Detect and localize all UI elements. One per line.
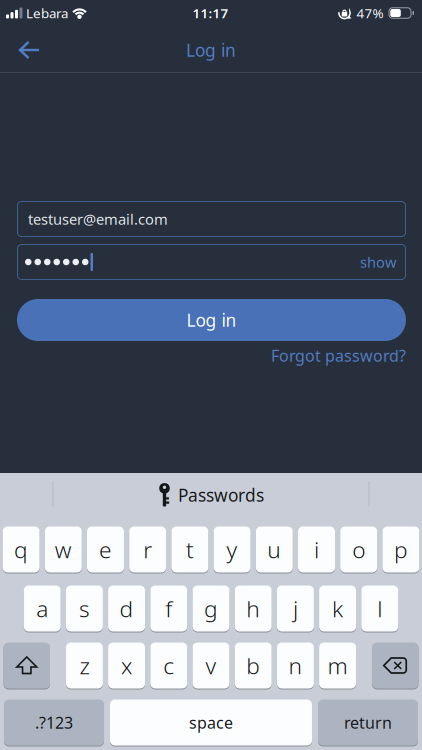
button[interactable]: r bbox=[129, 526, 166, 572]
button[interactable]: s bbox=[66, 585, 103, 631]
button[interactable] bbox=[372, 642, 418, 688]
button[interactable]: v bbox=[192, 642, 229, 688]
button[interactable]: Forgot password? bbox=[271, 345, 406, 366]
button[interactable]: t bbox=[171, 526, 208, 572]
staticText: testuser@email.com bbox=[28, 209, 168, 229]
button[interactable]: e bbox=[87, 526, 124, 572]
button[interactable]: return bbox=[318, 699, 418, 745]
staticText: 47% bbox=[356, 4, 383, 22]
button[interactable]: l bbox=[361, 585, 398, 631]
staticText: l bbox=[377, 593, 382, 623]
staticText: Log in bbox=[186, 38, 236, 61]
button[interactable]: y bbox=[214, 526, 251, 572]
staticText: b bbox=[246, 650, 260, 680]
staticText: w bbox=[55, 534, 72, 564]
staticText: i bbox=[314, 534, 319, 564]
button[interactable]: Passwords bbox=[81, 469, 341, 518]
button[interactable]: p bbox=[382, 526, 419, 572]
button[interactable]: d bbox=[108, 585, 145, 631]
staticText: a bbox=[36, 593, 48, 623]
button[interactable]: m bbox=[319, 642, 356, 688]
staticText: 11:17 bbox=[192, 4, 228, 22]
staticText: u bbox=[267, 534, 281, 564]
button[interactable]: h bbox=[235, 585, 272, 631]
staticText: s bbox=[79, 593, 90, 623]
staticText: x bbox=[121, 650, 132, 680]
staticText: k bbox=[332, 593, 343, 623]
staticText: v bbox=[205, 650, 216, 680]
button[interactable]: w bbox=[45, 526, 82, 572]
button[interactable]: b bbox=[235, 642, 272, 688]
staticText: c bbox=[163, 650, 174, 680]
button[interactable]: n bbox=[277, 642, 314, 688]
button[interactable] bbox=[0, 41, 41, 59]
staticText: o bbox=[352, 534, 365, 564]
staticText: Lebara bbox=[26, 4, 68, 22]
button[interactable]: show bbox=[17, 244, 406, 280]
button[interactable]: z bbox=[66, 642, 103, 688]
staticText: g bbox=[204, 593, 218, 623]
staticText: f bbox=[165, 593, 172, 623]
button[interactable]: j bbox=[277, 585, 314, 631]
staticText: Passwords bbox=[178, 483, 264, 506]
button[interactable]: i bbox=[298, 526, 335, 572]
button[interactable]: k bbox=[319, 585, 356, 631]
staticText: t bbox=[186, 534, 194, 564]
staticText: space bbox=[189, 712, 233, 733]
button[interactable]: space bbox=[110, 699, 312, 745]
staticText: d bbox=[120, 593, 134, 623]
button[interactable]: c bbox=[150, 642, 187, 688]
staticText: return bbox=[344, 712, 392, 733]
button[interactable]: q bbox=[3, 526, 40, 572]
button[interactable]: u bbox=[256, 526, 293, 572]
button[interactable]: testuser@email.com bbox=[17, 201, 406, 237]
button[interactable]: a bbox=[24, 585, 61, 631]
button[interactable]: Log in bbox=[17, 299, 406, 341]
staticText: r bbox=[143, 534, 152, 564]
button[interactable]: .?123 bbox=[4, 699, 104, 745]
staticText: .?123 bbox=[35, 712, 73, 733]
button[interactable]: show bbox=[360, 252, 397, 272]
button[interactable]: o bbox=[340, 526, 377, 572]
button[interactable] bbox=[3, 642, 50, 688]
button[interactable]: g bbox=[192, 585, 229, 631]
staticText: m bbox=[328, 650, 348, 680]
staticText: z bbox=[79, 650, 89, 680]
button[interactable]: f bbox=[150, 585, 187, 631]
staticText: Forgot password? bbox=[271, 345, 406, 366]
staticText: Log in bbox=[186, 308, 236, 331]
staticText: q bbox=[14, 534, 28, 564]
staticText: e bbox=[99, 534, 112, 564]
staticText: p bbox=[394, 534, 408, 564]
button[interactable]: x bbox=[108, 642, 145, 688]
staticText: show bbox=[360, 252, 397, 272]
staticText: j bbox=[293, 593, 298, 623]
staticText: h bbox=[246, 593, 260, 623]
staticText: y bbox=[227, 534, 238, 564]
staticText: n bbox=[288, 650, 302, 680]
